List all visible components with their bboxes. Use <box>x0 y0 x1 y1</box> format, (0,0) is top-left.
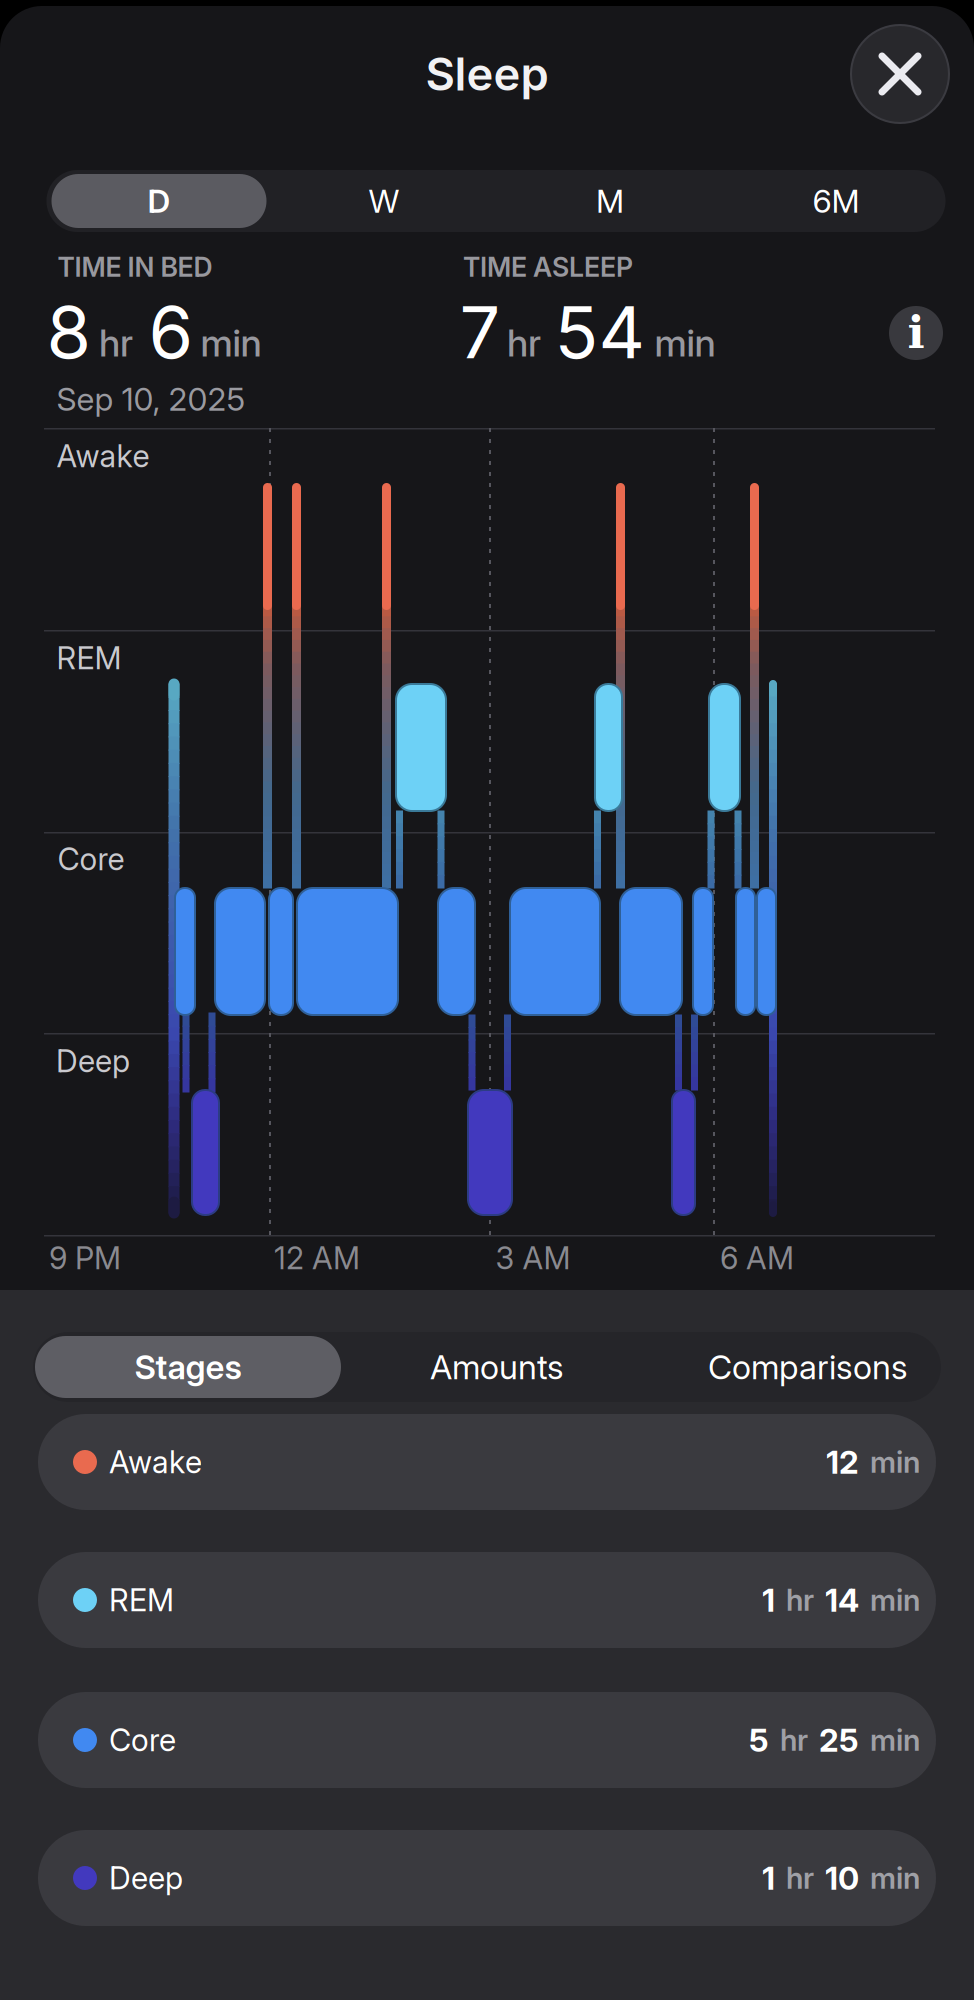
staticText: 6 AM <box>720 1240 794 1276</box>
staticText: min <box>200 321 261 365</box>
button[interactable]: M <box>502 174 717 228</box>
staticText: Amounts <box>430 1347 564 1387</box>
staticText: min <box>870 1723 920 1757</box>
staticText: 3 AM <box>495 1240 570 1276</box>
staticText: W <box>368 182 399 220</box>
staticText: 6M <box>812 182 859 220</box>
staticText: Core <box>109 1722 176 1758</box>
staticText: min <box>870 1861 920 1895</box>
staticText: Sleep <box>425 47 548 101</box>
staticText: 1 <box>762 1859 775 1897</box>
staticText: 14 <box>825 1581 859 1619</box>
button[interactable]: Comparisons <box>658 1338 958 1396</box>
staticText: TIME ASLEEP <box>463 251 633 283</box>
staticText: 5 <box>749 1721 769 1759</box>
button[interactable]: Stages <box>35 1336 341 1398</box>
staticText: 9 PM <box>49 1240 121 1276</box>
staticText: hr <box>507 321 541 365</box>
staticText: min <box>654 321 715 365</box>
staticText: 7 <box>459 289 500 374</box>
staticText: 10 <box>825 1859 859 1897</box>
staticText: Awake <box>109 1444 202 1480</box>
staticText: 25 <box>819 1721 859 1759</box>
staticText: Deep <box>109 1860 183 1896</box>
staticText: Stages <box>134 1347 241 1387</box>
button[interactable]: 6M <box>728 174 943 228</box>
button[interactable]: i <box>889 306 943 360</box>
button[interactable]: Core <box>38 1692 936 1788</box>
staticText: 1 <box>762 1581 775 1619</box>
button[interactable]: Awake <box>38 1414 936 1510</box>
staticText: i <box>907 305 924 359</box>
staticText: 54 <box>554 289 645 374</box>
staticText: 6 <box>148 289 193 374</box>
staticText: hr <box>786 1583 814 1617</box>
button[interactable]: D <box>51 174 266 228</box>
staticText: 12 <box>826 1443 859 1481</box>
button[interactable]: REM <box>38 1552 936 1648</box>
staticText: min <box>870 1583 920 1617</box>
staticText: Deep <box>56 1043 130 1079</box>
button[interactable]: W <box>276 174 491 228</box>
staticText: 12 AM <box>274 1240 360 1276</box>
button[interactable] <box>851 25 949 123</box>
staticText: 8 <box>46 289 91 374</box>
staticText: D <box>147 182 170 220</box>
button[interactable]: Deep <box>38 1830 936 1926</box>
staticText: Awake <box>56 438 149 474</box>
staticText: hr <box>99 321 133 365</box>
staticText: Core <box>57 841 124 877</box>
staticText: hr <box>786 1861 814 1895</box>
staticText: TIME IN BED <box>57 251 212 283</box>
staticText: Sep 10, 2025 <box>56 380 245 418</box>
staticText: REM <box>56 640 121 676</box>
staticText: M <box>596 182 624 220</box>
button[interactable]: Amounts <box>347 1338 647 1396</box>
staticText: hr <box>780 1723 808 1757</box>
staticText: REM <box>109 1582 174 1618</box>
staticText: min <box>870 1445 920 1479</box>
staticText: Comparisons <box>708 1347 908 1387</box>
